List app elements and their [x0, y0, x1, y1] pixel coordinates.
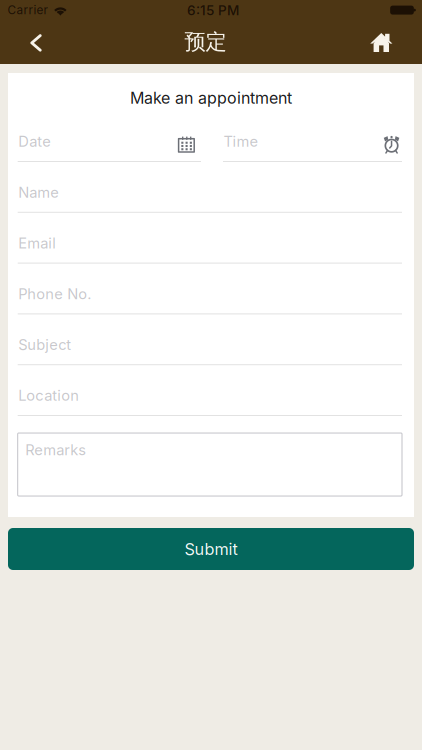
staticText: Remarks	[25, 441, 86, 459]
staticText: 6:15 PM	[187, 2, 239, 18]
staticText: Subject	[18, 336, 71, 353]
staticText: Date	[18, 133, 51, 150]
staticText: Submit	[184, 539, 237, 559]
staticText: Email	[18, 234, 56, 252]
button[interactable]: Choose date	[169, 128, 203, 160]
button[interactable]: Home	[359, 20, 403, 64]
staticText: Location	[18, 387, 79, 404]
button[interactable]: Back	[14, 21, 58, 65]
button[interactable]: Submit	[8, 528, 414, 570]
staticText: Time	[224, 133, 259, 150]
staticText: Carrier	[7, 3, 47, 17]
staticText: Make an appointment	[130, 88, 292, 108]
button[interactable]: Choose time	[376, 129, 408, 161]
staticText: Phone No.	[18, 285, 91, 303]
staticText: Name	[18, 183, 59, 201]
staticText: 预定	[184, 28, 226, 55]
